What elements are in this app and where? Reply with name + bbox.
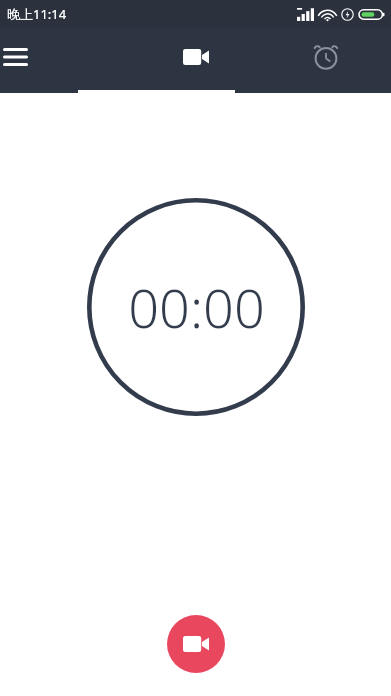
staticText: 00:00 [128,270,265,344]
button[interactable]: Start recording [167,615,225,673]
staticText: 晚上11:14 [7,5,67,23]
button[interactable]: Menu [0,28,131,93]
button[interactable]: Video [131,28,261,93]
button[interactable]: Alarm [261,28,391,93]
